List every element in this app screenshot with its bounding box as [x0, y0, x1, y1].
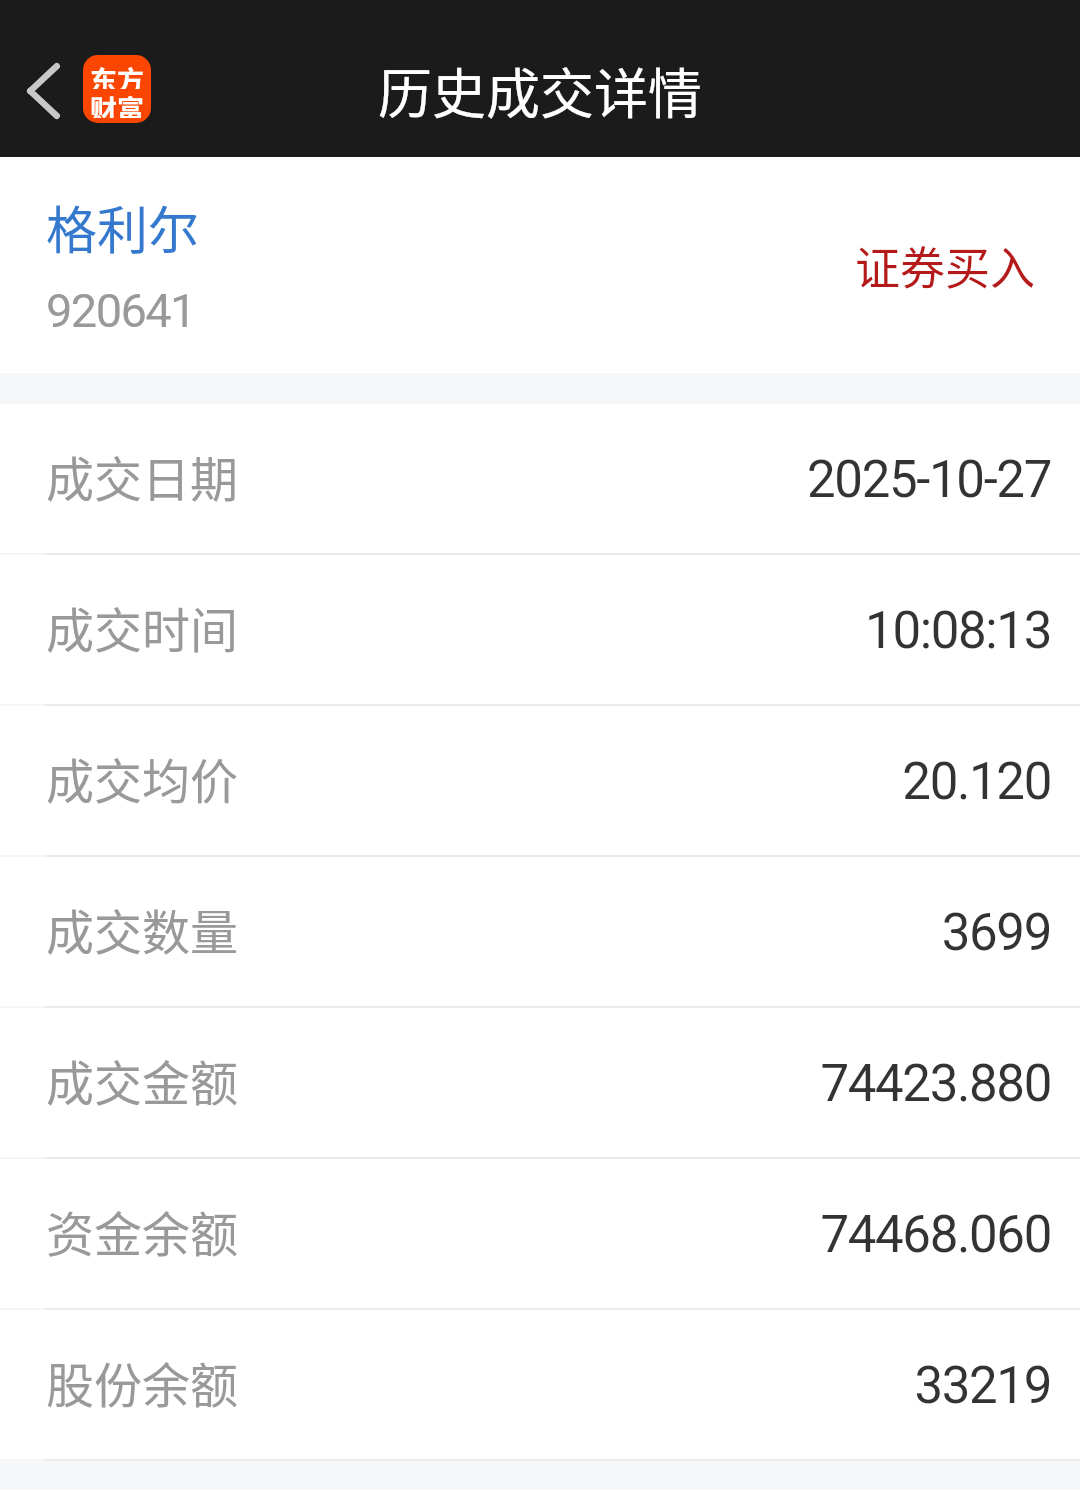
button[interactable]: 成交均价 [0, 706, 1080, 855]
staticText: 3699 [941, 903, 1051, 963]
staticText: 33219 [914, 1356, 1051, 1416]
button[interactable]: 资金余额 [0, 1159, 1080, 1308]
staticText: 20.120 [902, 752, 1051, 812]
staticText: 格利尔 [46, 190, 200, 264]
staticText: 成交金额 [46, 1045, 239, 1115]
staticText: 股份余额 [46, 1347, 239, 1417]
button[interactable]: 股份余额 [0, 1310, 1080, 1459]
staticText: 证券买入 [855, 233, 1036, 298]
button[interactable]: 成交日期 [0, 404, 1080, 553]
staticText: 财富 [90, 89, 144, 118]
button[interactable]: 成交金额 [0, 1008, 1080, 1157]
staticText: 成交日期 [46, 441, 239, 511]
staticText: 东方 [90, 60, 144, 89]
button[interactable]: Back [0, 57, 159, 125]
button[interactable]: 成交数量 [0, 857, 1080, 1006]
staticText: 74468.060 [820, 1205, 1051, 1265]
staticText: 资金余额 [46, 1196, 239, 1266]
button[interactable]: 格利尔 [0, 157, 1080, 373]
staticText: 920641 [46, 283, 195, 338]
staticText: 成交均价 [46, 743, 239, 813]
staticText: 成交时间 [46, 592, 239, 662]
button[interactable]: 成交时间 [0, 555, 1080, 704]
staticText: 74423.880 [820, 1054, 1051, 1114]
staticText: 历史成交详情 [378, 51, 702, 129]
staticText: 10:08:13 [865, 601, 1051, 661]
staticText: 成交数量 [46, 894, 239, 964]
staticText: 2025-10-27 [807, 450, 1051, 510]
